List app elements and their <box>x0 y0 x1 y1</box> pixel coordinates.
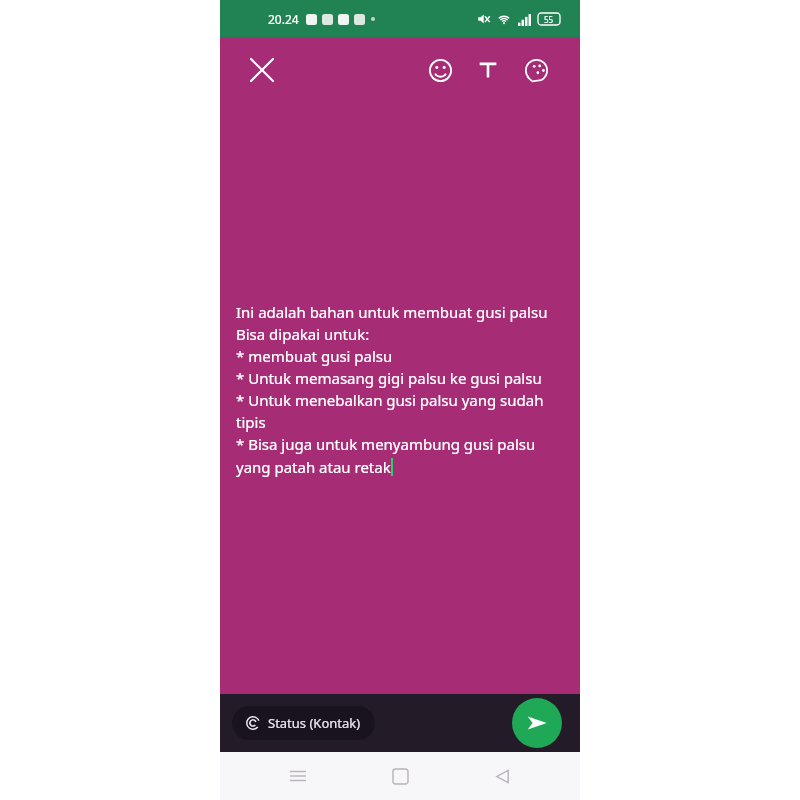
staticText: * membuat gusi palsu <box>236 346 393 368</box>
staticText: Ini adalah bahan untuk membuat gusi pals… <box>236 302 548 324</box>
staticText: tipis <box>236 412 266 434</box>
button[interactable]: Back <box>478 752 526 800</box>
button[interactable]: Recents <box>274 752 322 800</box>
staticText: 55 <box>544 14 554 25</box>
staticText: Bisa dipakai untuk: <box>236 324 370 346</box>
button[interactable]: Close <box>240 48 284 92</box>
button[interactable]: Emoji <box>418 48 462 92</box>
button[interactable]: Home <box>376 752 424 800</box>
button[interactable]: Background color <box>514 48 558 92</box>
staticText: * Untuk menebalkan gusi palsu yang sudah <box>236 390 544 412</box>
staticText: yang patah atau retak <box>236 457 391 477</box>
staticText: * Bisa juga untuk menyambung gusi palsu <box>236 434 536 456</box>
staticText: Status (Kontak) <box>268 714 361 732</box>
button[interactable]: Send <box>512 698 562 748</box>
button[interactable]: Status (Kontak) <box>232 706 375 740</box>
staticText: 20.24 <box>268 11 299 27</box>
button[interactable]: Ini adalah bahan untuk membuat gusi pals… <box>236 302 548 478</box>
button[interactable]: Change font <box>466 48 510 92</box>
staticText: * Untuk memasang gigi palsu ke gusi pals… <box>236 368 542 390</box>
